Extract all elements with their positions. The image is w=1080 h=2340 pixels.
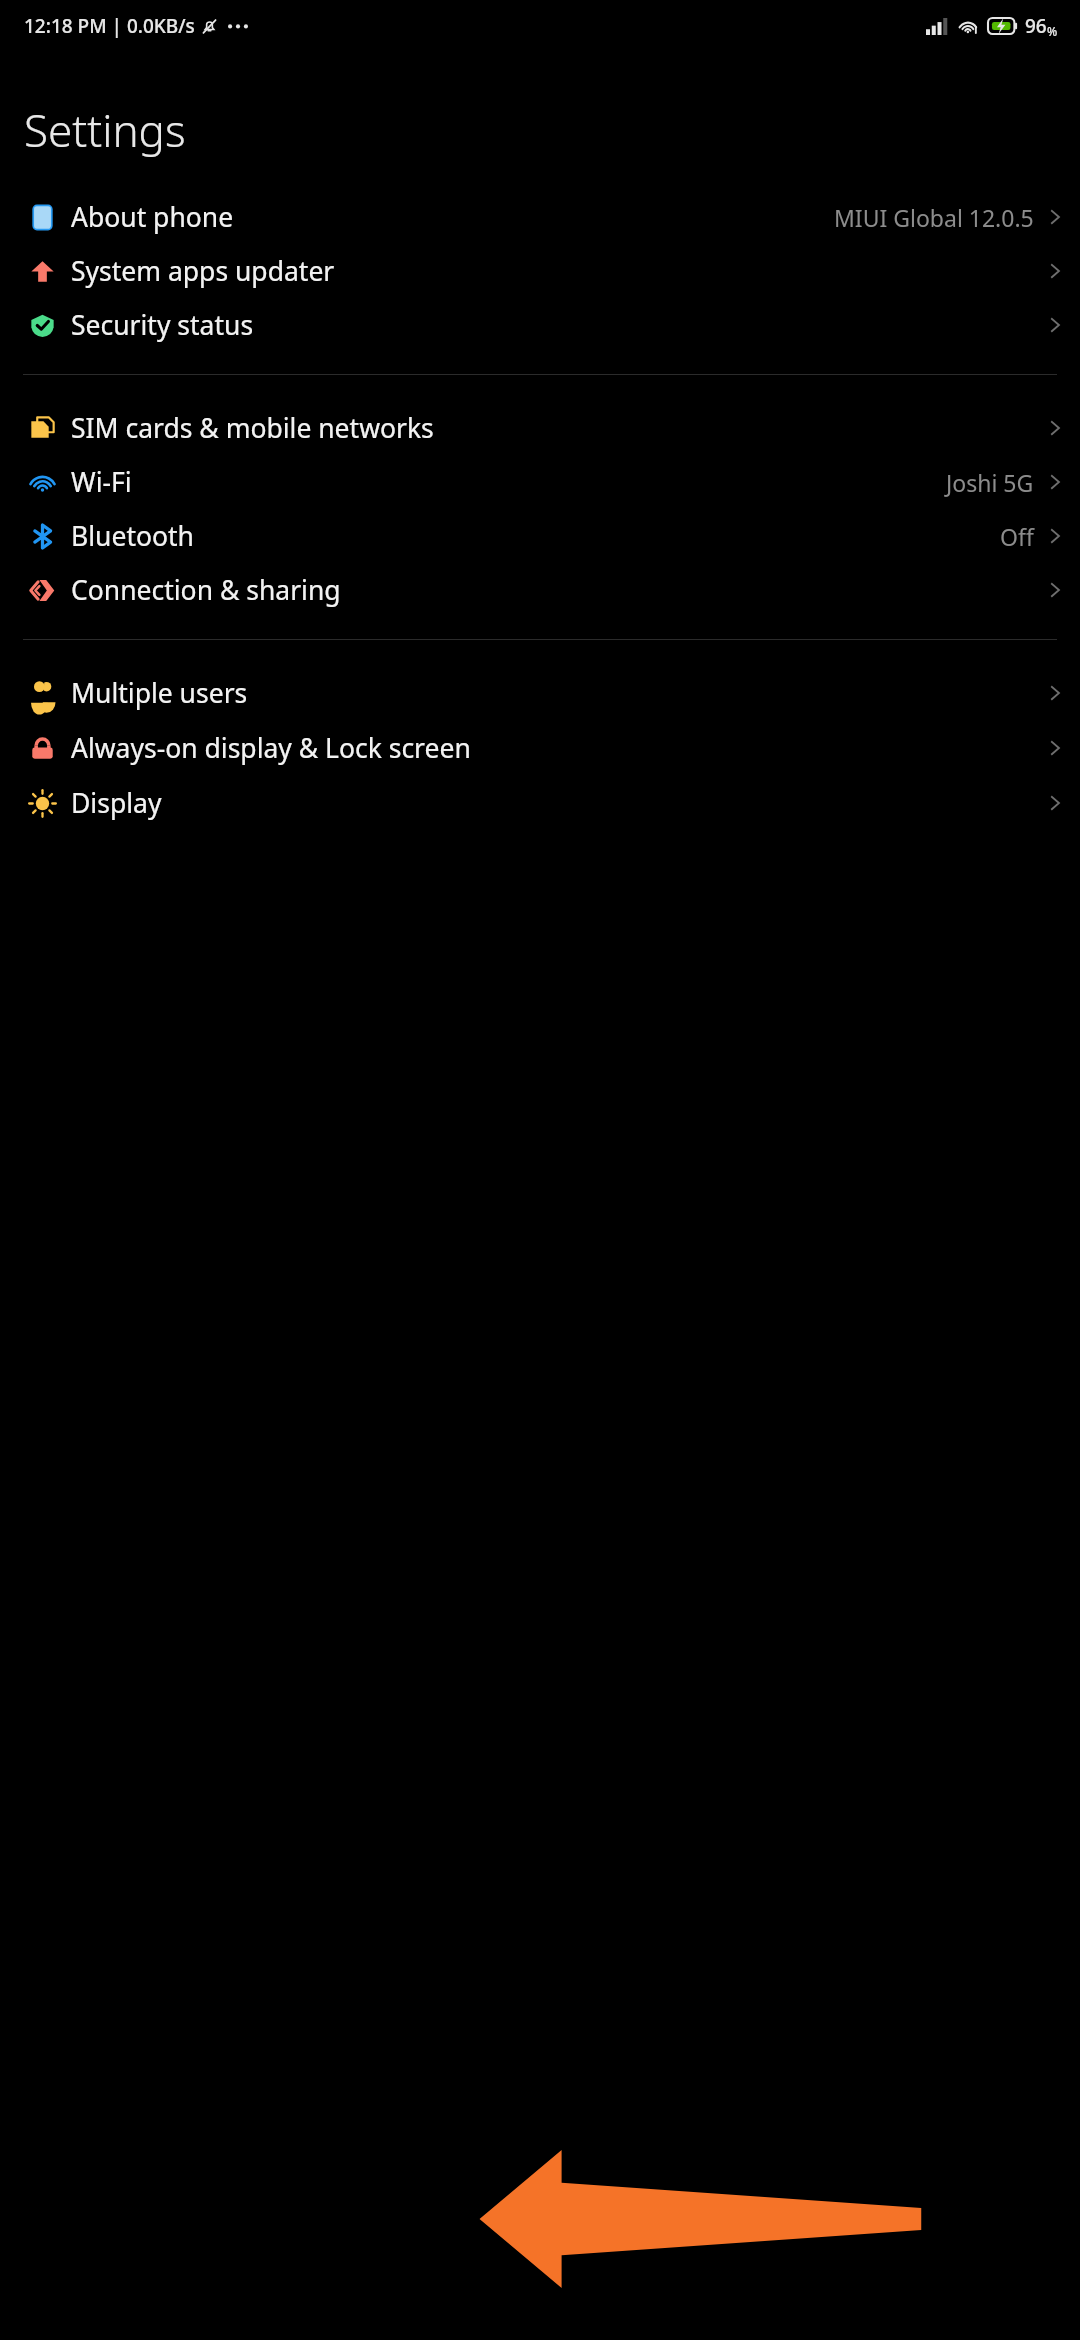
staticText: Always-on display & Lock screen — [71, 730, 1044, 766]
button[interactable]: Bluetooth — [0, 509, 1080, 563]
button[interactable]: Connection & sharing — [0, 563, 1080, 617]
staticText: SIM cards & mobile networks — [71, 410, 1044, 446]
button[interactable]: Always-on display & Lock screen — [0, 720, 1080, 776]
button[interactable]: Wi-Fi — [0, 455, 1080, 509]
button[interactable]: SIM cards & mobile networks — [0, 401, 1080, 455]
staticText: Multiple users — [71, 675, 1044, 711]
other: Annotation arrow pointing to Display — [0, 0, 1080, 2340]
staticText: Off — [1000, 521, 1034, 552]
staticText: Settings — [24, 100, 186, 160]
staticText: Display — [71, 785, 1044, 821]
button[interactable]: Multiple users — [0, 666, 1080, 720]
button[interactable]: System apps updater — [0, 244, 1080, 298]
button[interactable]: About phone — [0, 190, 1080, 244]
staticText: Security status — [71, 307, 1044, 343]
staticText: About phone — [71, 199, 834, 235]
staticText: Connection & sharing — [71, 572, 1044, 608]
staticText: Wi-Fi — [71, 464, 946, 500]
button[interactable]: Display — [0, 776, 1080, 830]
staticText: 12:18 PM | 0.0KB/s — [24, 13, 195, 39]
staticText: MIUI Global 12.0.5 — [834, 202, 1034, 233]
staticText: Joshi 5G — [946, 467, 1034, 498]
staticText: Bluetooth — [71, 518, 1000, 554]
staticText: 96 — [1025, 13, 1047, 39]
staticText: System apps updater — [71, 253, 1044, 289]
staticText: % — [1047, 23, 1058, 39]
button[interactable]: Security status — [0, 298, 1080, 352]
